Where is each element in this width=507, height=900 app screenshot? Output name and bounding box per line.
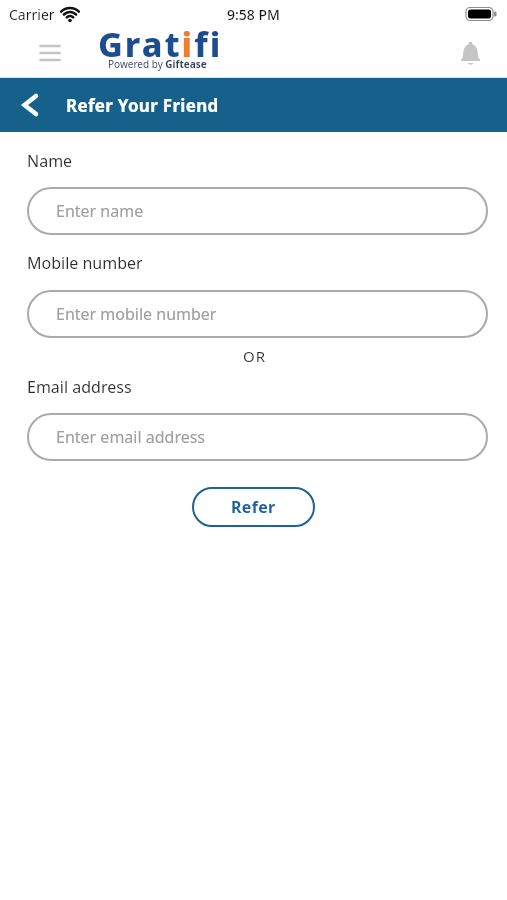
button[interactable]: Enter name [27, 187, 488, 235]
staticText: Email address [27, 376, 132, 398]
staticText: Refer [231, 496, 276, 518]
button[interactable] [456, 38, 484, 68]
staticText: Enter email address [56, 426, 206, 448]
staticText: 9:58 PM [227, 5, 280, 24]
staticText: Enter name [56, 200, 144, 222]
staticText: Name [27, 150, 73, 172]
button[interactable] [34, 37, 66, 69]
staticText: Powered by Giftease [108, 57, 207, 71]
staticText: Gratifi [98, 21, 223, 67]
button[interactable] [14, 90, 44, 120]
staticText: OR [243, 346, 267, 366]
button[interactable]: Enter mobile number [27, 290, 488, 338]
staticText: Carrier [9, 5, 55, 24]
staticText: Enter mobile number [56, 303, 217, 325]
button[interactable]: Refer [192, 487, 315, 527]
staticText: Mobile number [27, 252, 143, 274]
button[interactable]: Enter email address [27, 413, 488, 461]
staticText: Refer Your Friend [66, 94, 219, 117]
